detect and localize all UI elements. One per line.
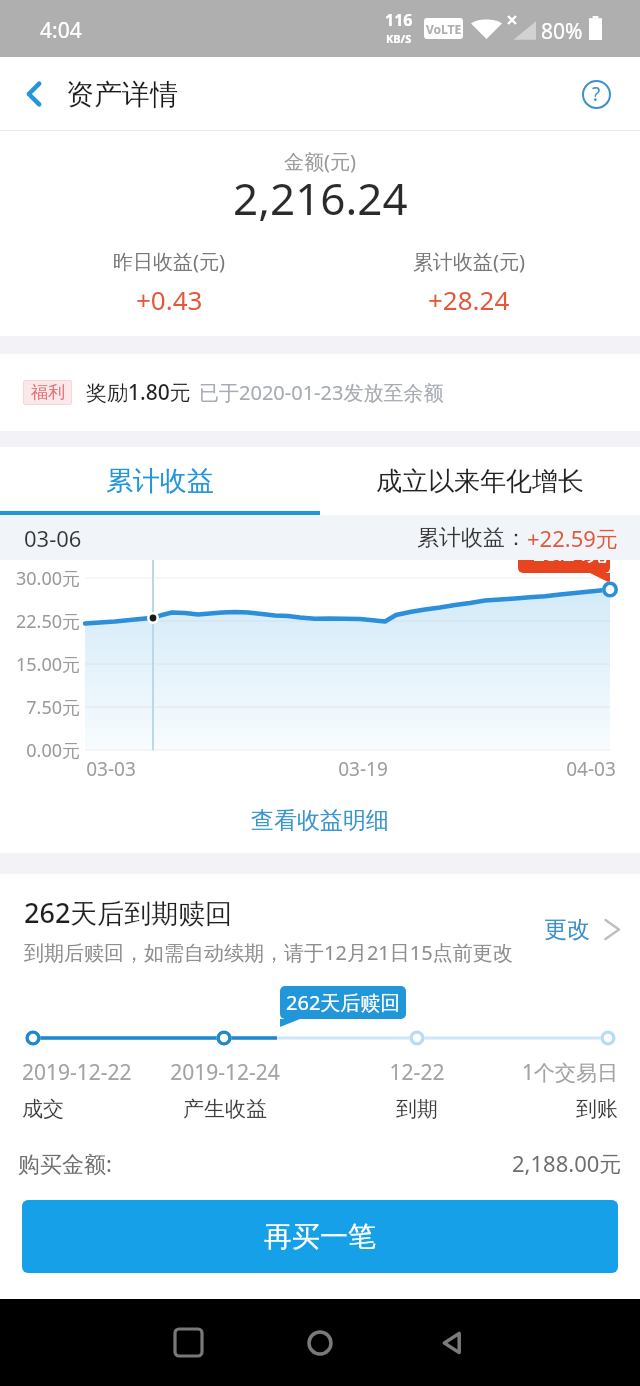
staticText: 查看收益明细: [251, 806, 389, 835]
staticText: 7.50元: [0, 695, 80, 720]
staticText: 22.50元: [0, 609, 80, 634]
button[interactable]: 成立以来年化增长: [320, 447, 640, 515]
staticText: 累计收益(元): [413, 248, 525, 275]
staticText: 再买一笔: [264, 1219, 376, 1254]
staticText: 2019-12-22: [22, 1058, 142, 1087]
staticText: 更改: [544, 915, 590, 944]
staticText: 262天后到期赎回: [24, 894, 233, 931]
staticText: 产生收益: [165, 1096, 285, 1122]
staticText: 12-22: [357, 1058, 477, 1087]
staticText: +22.59元: [527, 523, 618, 553]
staticText: 262天后赎回: [286, 989, 401, 1016]
button[interactable]: 福利: [0, 354, 640, 431]
staticText: 福利: [31, 382, 65, 403]
staticText: ?: [592, 81, 601, 107]
button[interactable]: Home: [276, 1299, 364, 1386]
staticText: 15.00元: [0, 652, 80, 677]
staticText: 2,216.24: [233, 168, 408, 228]
staticText: 金额(元): [284, 148, 356, 175]
staticText: 30.00元: [0, 566, 80, 591]
button[interactable]: Recents: [144, 1299, 232, 1386]
staticText: 1个交易日: [498, 1058, 618, 1087]
button[interactable]: 查看收益明细: [0, 787, 640, 853]
staticText: 奖励1.80元: [86, 378, 191, 407]
staticText: 资产详情: [66, 77, 178, 112]
staticText: 到账: [498, 1096, 618, 1122]
staticText: 03-03: [61, 756, 161, 782]
staticText: 2019-12-24: [165, 1058, 285, 1087]
button[interactable]: 更改: [544, 915, 620, 944]
button[interactable]: Back: [0, 57, 68, 131]
button[interactable]: Help: [552, 57, 640, 131]
staticText: 购买金额:: [18, 1148, 112, 1178]
staticText: 到期后赎回，如需自动续期，请于12月21日15点前更改: [24, 939, 513, 966]
staticText: +0.43: [136, 282, 203, 317]
staticText: 累计收益：: [417, 524, 527, 552]
staticText: 已于2020-01-23发放至余额: [199, 379, 444, 406]
staticText: KB/S: [386, 31, 412, 46]
staticText: 0.00元: [0, 738, 80, 763]
staticText: 2,188.00元: [512, 1148, 622, 1178]
button[interactable]: 累计收益: [0, 447, 320, 515]
button[interactable]: 再买一笔: [22, 1200, 618, 1273]
staticText: 到期: [357, 1096, 477, 1122]
staticText: 4:04: [40, 16, 82, 45]
staticText: 04-03: [541, 756, 640, 782]
staticText: 成交: [22, 1096, 142, 1122]
staticText: +28.24元: [521, 539, 608, 568]
staticText: 成立以来年化增长: [376, 465, 584, 498]
staticText: 03-06: [24, 523, 82, 553]
staticText: 03-19: [313, 756, 413, 782]
staticText: +28.24: [428, 282, 510, 317]
button[interactable]: Back: [408, 1299, 496, 1386]
staticText: 116: [385, 9, 413, 31]
staticText: 80%: [541, 17, 583, 46]
staticText: 累计收益: [106, 464, 214, 498]
staticText: 昨日收益(元): [113, 248, 225, 275]
staticText: VoLTE: [426, 21, 462, 37]
